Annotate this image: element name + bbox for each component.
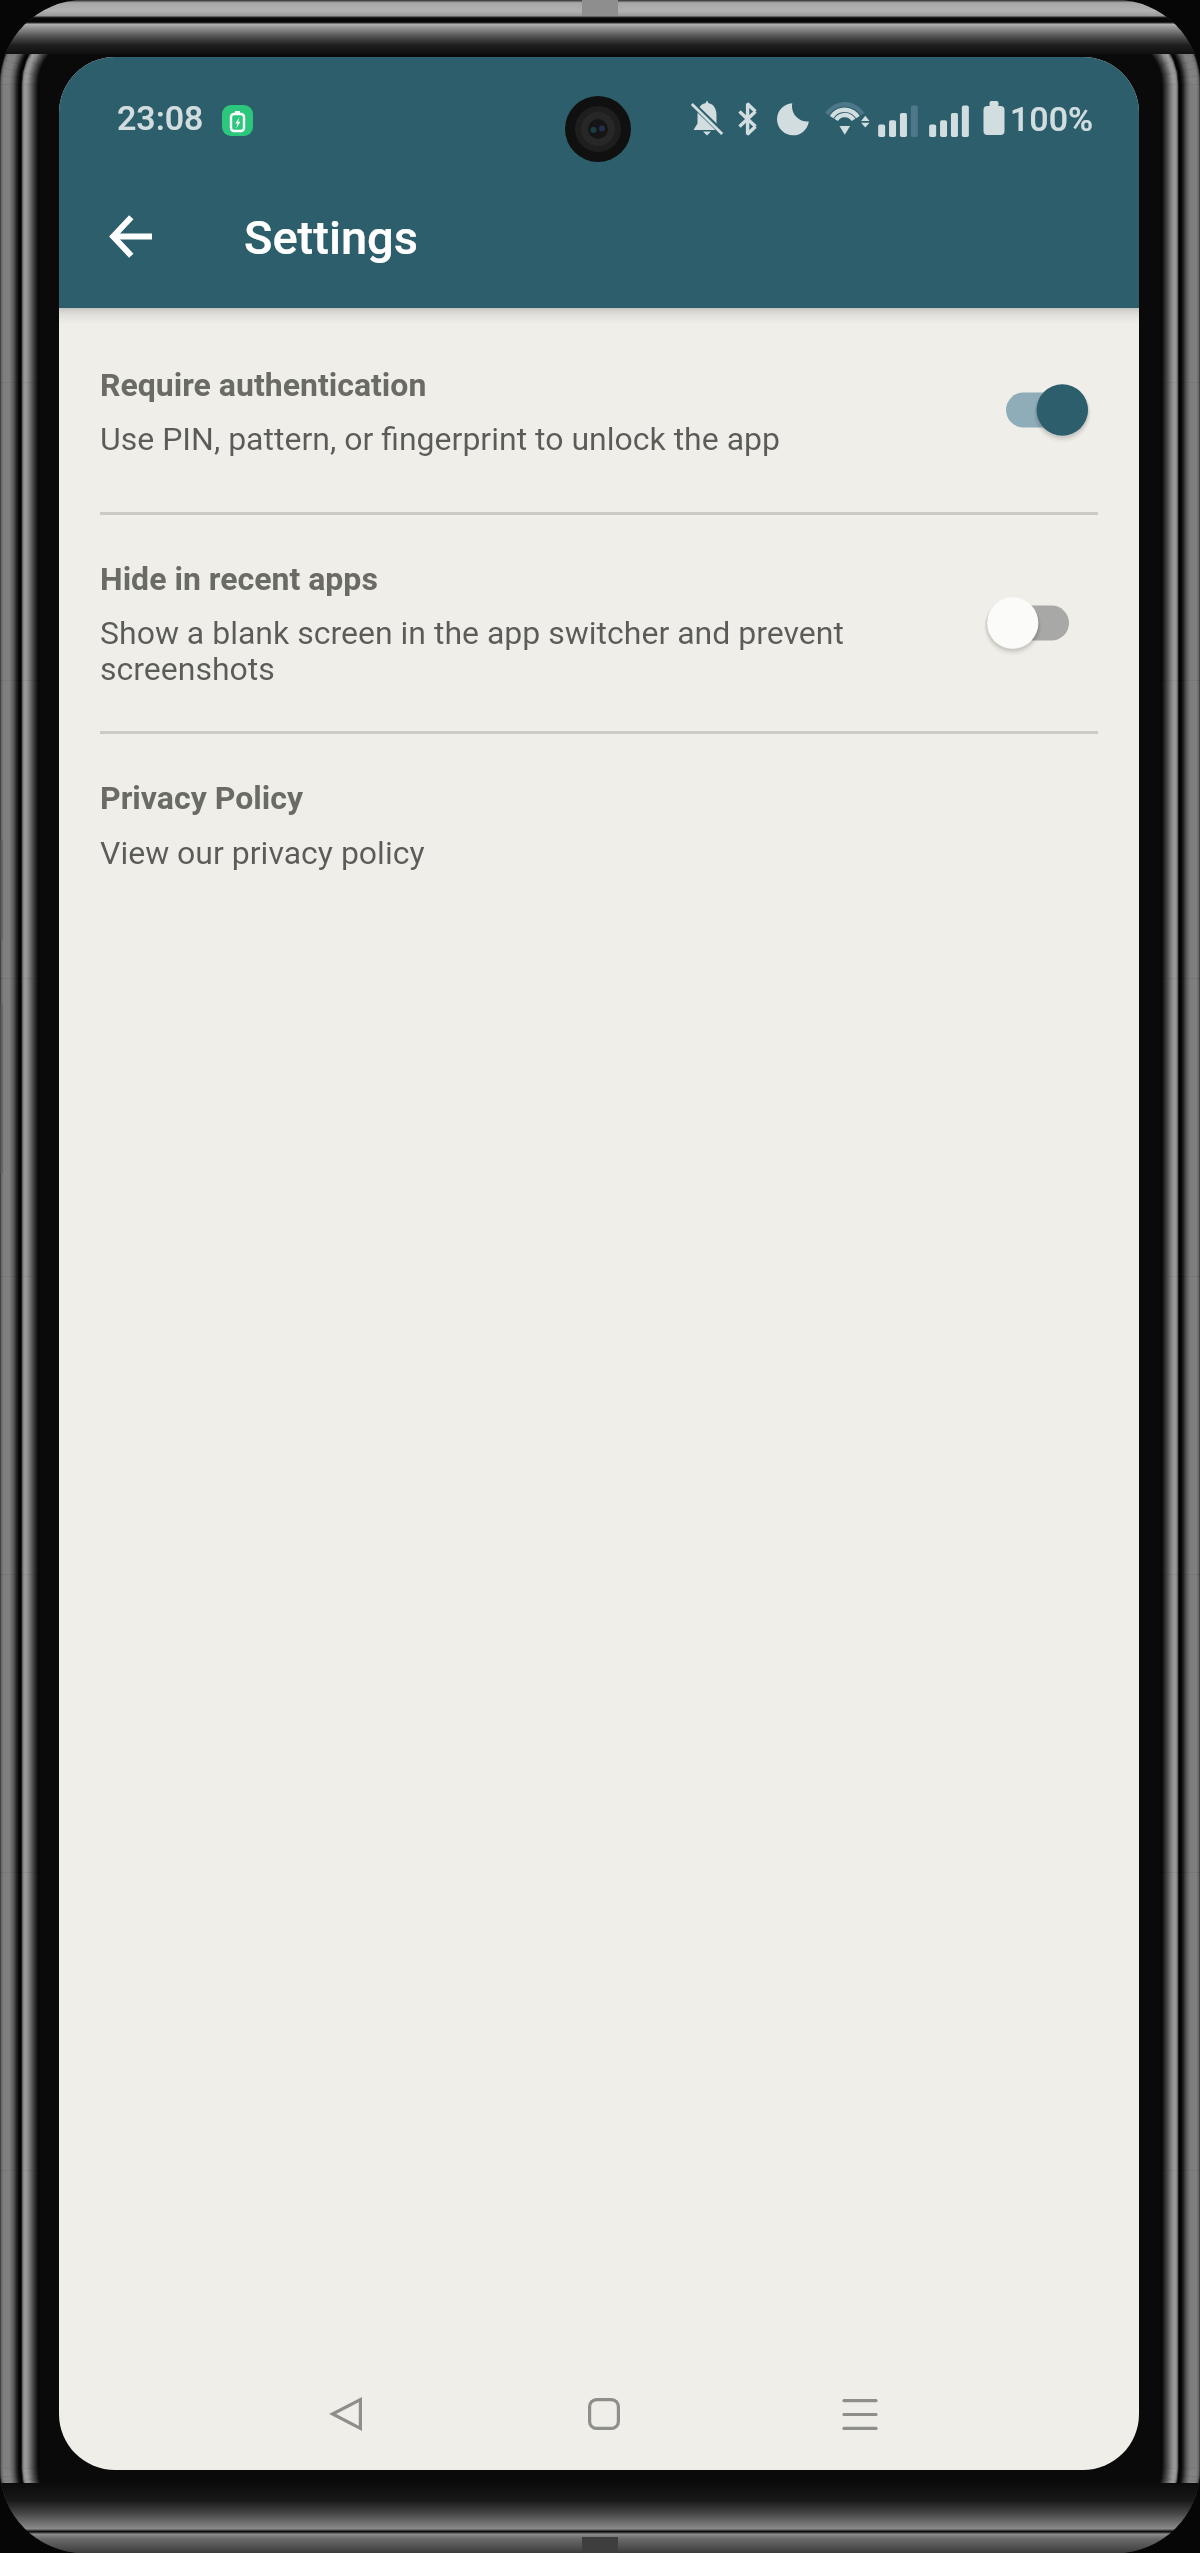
button[interactable]: Enabled (994, 378, 1100, 442)
staticText: View our privacy policy (100, 834, 1000, 872)
staticText: Require authentication (100, 366, 427, 404)
button[interactable]: Privacy Policy (59, 747, 1139, 907)
button[interactable]: Navigate up (91, 196, 171, 276)
button[interactable]: Home (548, 2358, 660, 2470)
staticText: 100% (1010, 99, 1093, 139)
staticText: Settings (244, 210, 419, 265)
button[interactable]: Require authentication (59, 327, 1139, 497)
button[interactable]: Back (290, 2358, 402, 2470)
staticText: 23:08 (117, 98, 204, 138)
staticText: Use PIN, pattern, or fingerprint to unlo… (100, 420, 1000, 458)
button[interactable]: Hide in recent apps (59, 525, 1139, 725)
button[interactable]: Disabled (975, 591, 1081, 655)
staticText: Privacy Policy (100, 779, 303, 817)
button[interactable]: Recent apps (804, 2358, 916, 2470)
staticText: Show a blank screen in the app switcher … (100, 614, 880, 687)
staticText: Hide in recent apps (100, 560, 378, 598)
